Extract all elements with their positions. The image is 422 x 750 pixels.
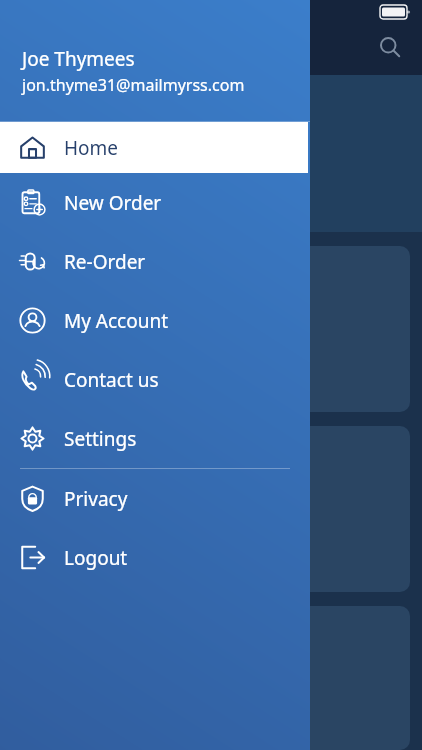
staticText: New Order xyxy=(64,190,162,216)
staticText: Contact us xyxy=(64,367,159,393)
button[interactable]: Home xyxy=(0,122,308,173)
staticText: Logout xyxy=(64,545,128,571)
button[interactable]: Privacy xyxy=(0,469,310,528)
staticText: Home xyxy=(64,135,119,161)
staticText: Joe Thymees xyxy=(22,46,135,72)
staticText: Privacy xyxy=(64,486,128,512)
staticText: Settings xyxy=(64,426,137,452)
button[interactable]: Settings xyxy=(0,409,310,468)
button[interactable] xyxy=(14,246,410,412)
button[interactable]: Re-Order xyxy=(0,232,310,291)
staticText: Re-Order xyxy=(64,249,146,275)
button[interactable]: Contact us xyxy=(0,350,310,409)
staticText: jon.thyme31@mailmyrss.com xyxy=(22,74,245,96)
button[interactable]: Women's Health xyxy=(14,426,410,592)
button[interactable]: Search xyxy=(368,25,412,69)
staticText: Free next-day delivery xyxy=(0,141,422,182)
button[interactable]: New Order xyxy=(0,173,310,232)
staticText: My Account xyxy=(64,308,169,334)
button[interactable]: My Account xyxy=(0,291,310,350)
button[interactable]: Logout xyxy=(0,528,310,587)
button[interactable]: Sexual Health xyxy=(14,606,410,750)
